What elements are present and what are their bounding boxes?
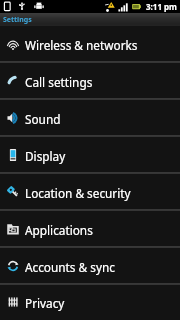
staticText: Settings: [3, 15, 32, 25]
button[interactable]: Applications: [0, 211, 180, 248]
other: Battery: [132, 2, 141, 11]
other: USB connected: [17, 1, 27, 11]
button[interactable]: Privacy: [0, 285, 180, 320]
other: Signal strength: [118, 2, 128, 12]
staticText: Privacy: [25, 295, 65, 311]
other: No mobile data: [104, 1, 115, 12]
staticText: Location & security: [25, 185, 131, 201]
other: SIM card status: [2, 1, 13, 12]
button[interactable]: Wireless & networks: [0, 26, 180, 63]
button[interactable]: Sound: [0, 100, 180, 137]
staticText: Applications: [25, 222, 93, 238]
other: USB debugging enabled: [34, 1, 44, 11]
staticText: Display: [25, 148, 66, 164]
staticText: Accounts & sync: [25, 259, 115, 275]
staticText: Sound: [25, 111, 61, 127]
staticText: 3:11 pm: [146, 1, 177, 12]
staticText: Call settings: [25, 74, 93, 90]
button[interactable]: Call settings: [0, 63, 180, 100]
button[interactable]: Location & security: [0, 174, 180, 211]
button[interactable]: Accounts & sync: [0, 248, 180, 285]
button[interactable]: Display: [0, 137, 180, 174]
staticText: Wireless & networks: [25, 37, 138, 53]
